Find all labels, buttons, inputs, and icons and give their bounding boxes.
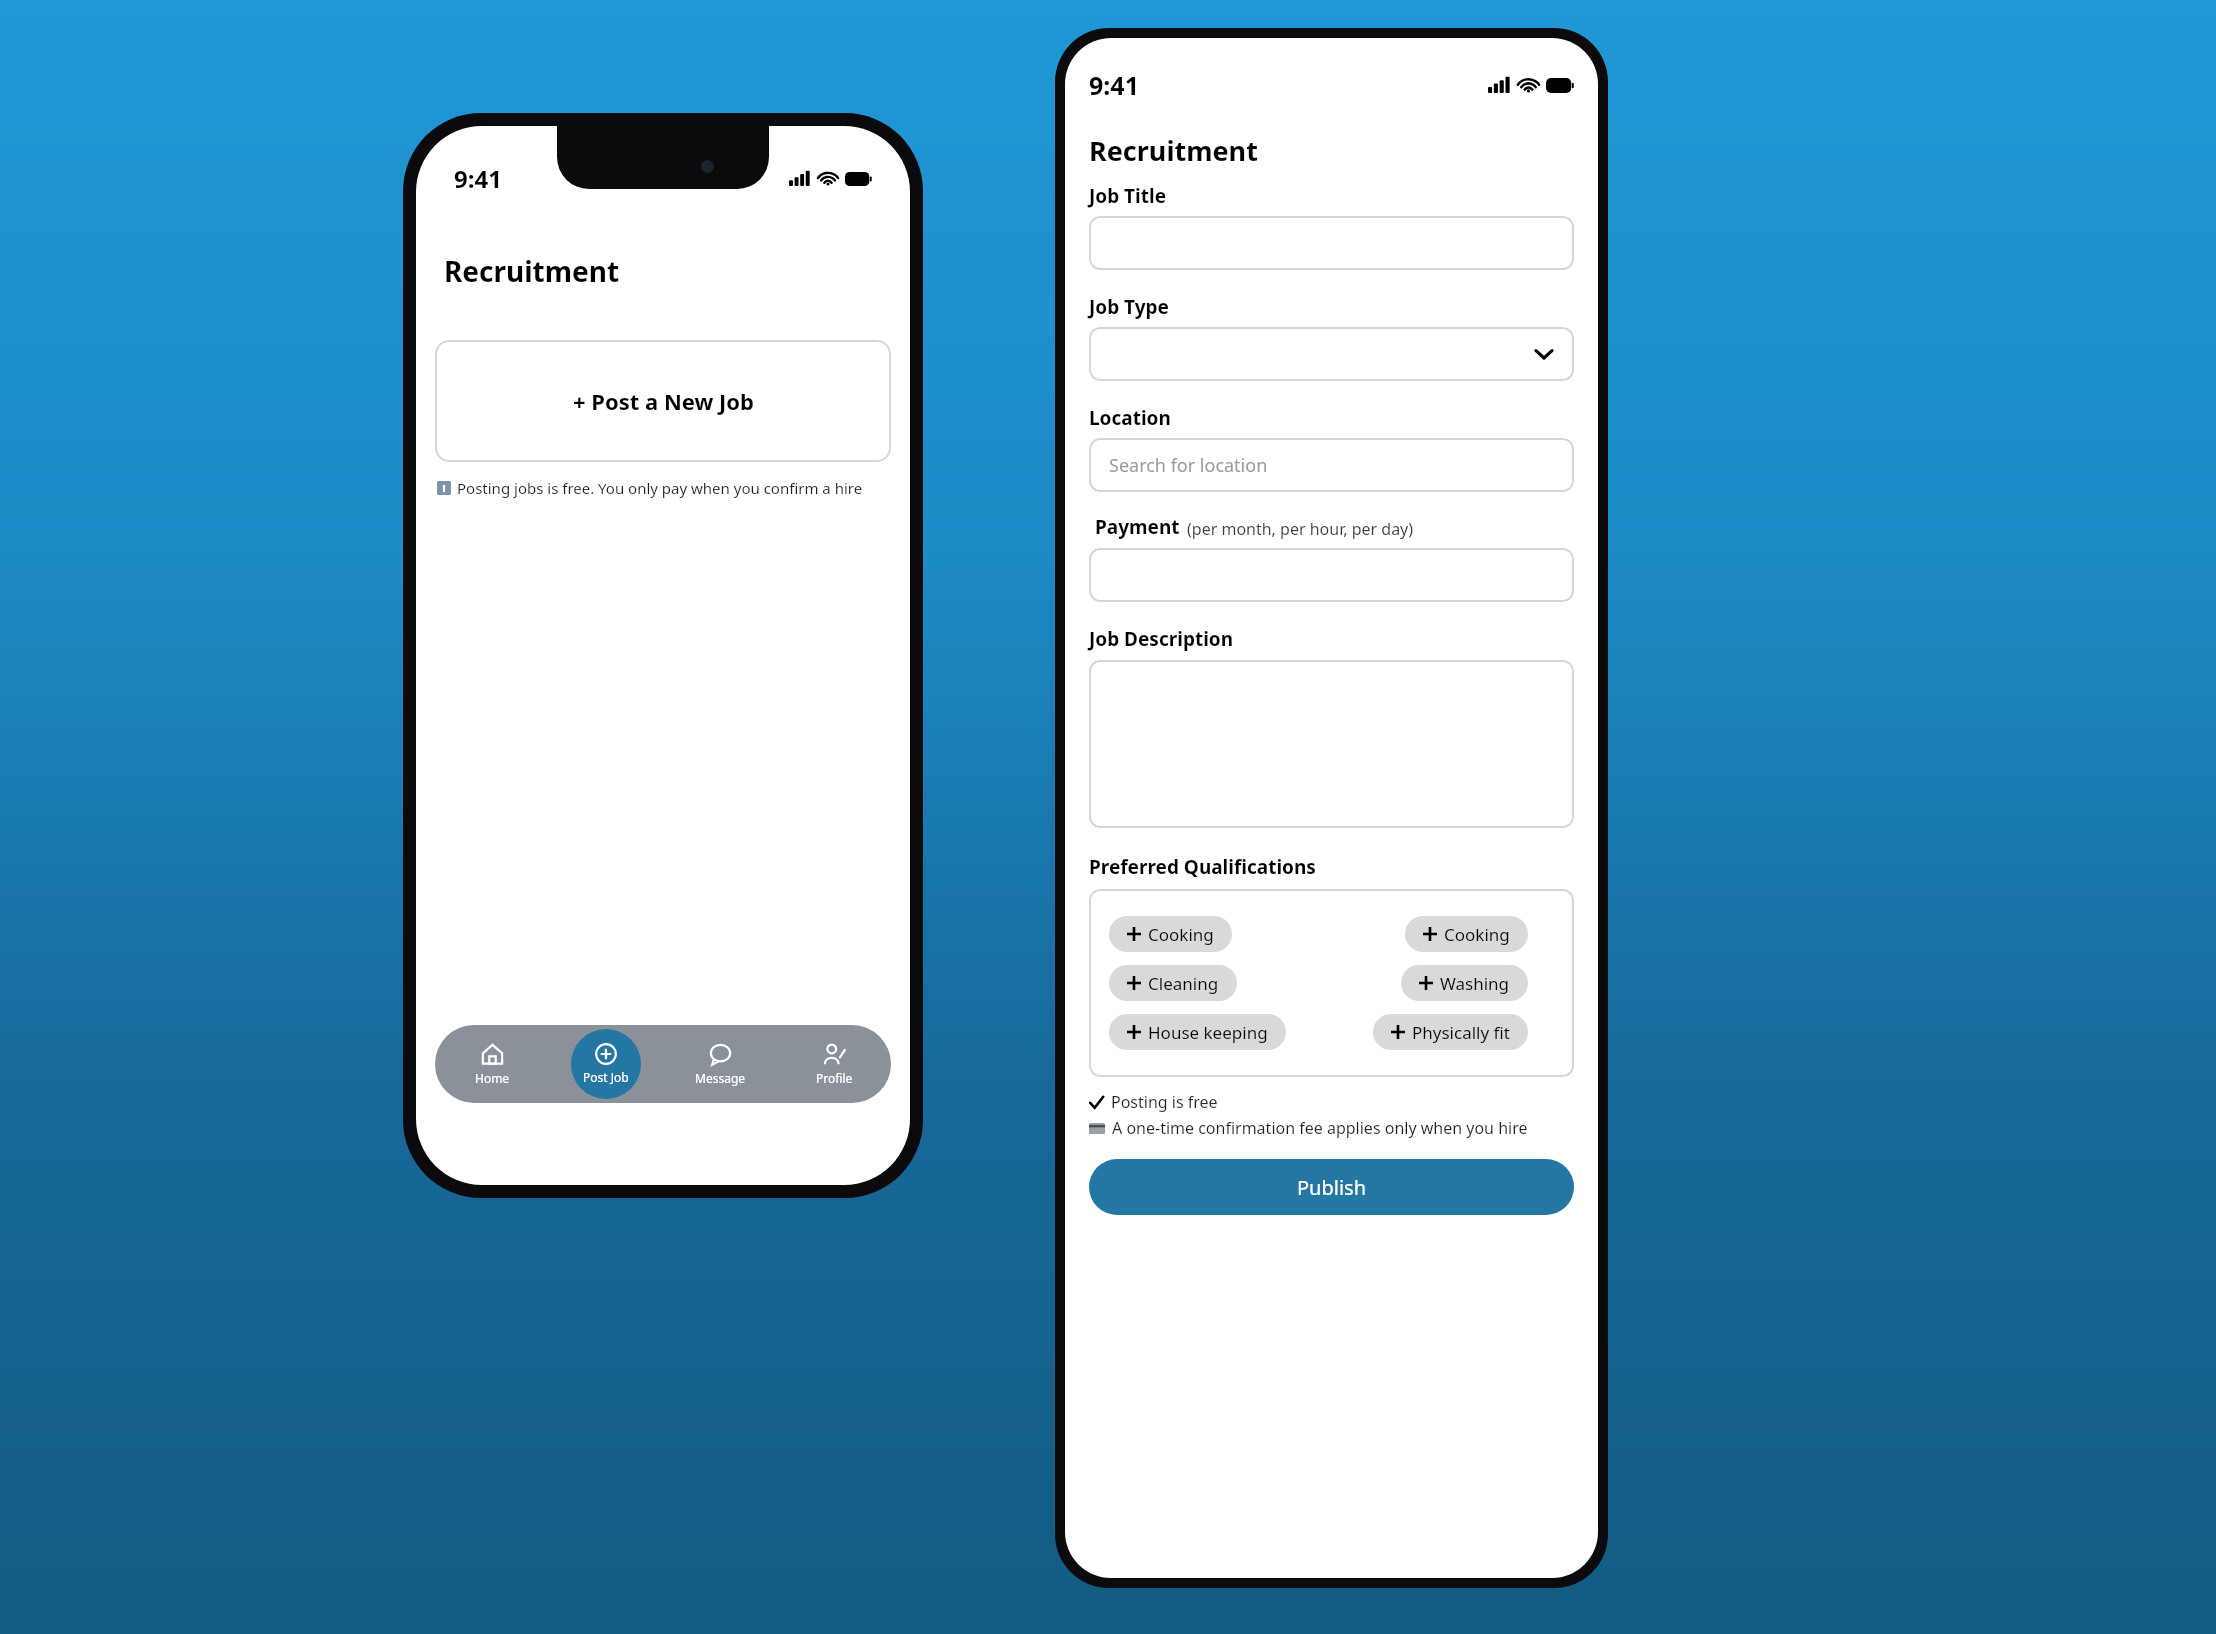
- button[interactable]: Publish: [1089, 1159, 1574, 1215]
- button[interactable]: [1089, 660, 1574, 828]
- button[interactable]: Physically fit: [1373, 1014, 1528, 1050]
- button[interactable]: [1089, 548, 1574, 602]
- button[interactable]: Cleaning: [1109, 965, 1237, 1001]
- staticText: Cooking: [1148, 923, 1214, 946]
- button[interactable]: [1089, 216, 1574, 270]
- staticText: Post Job: [583, 1069, 629, 1085]
- staticText: Publish: [1297, 1174, 1367, 1201]
- button[interactable]: Home: [435, 1025, 549, 1103]
- staticText: Recruitment: [1089, 132, 1258, 169]
- button[interactable]: [1089, 327, 1574, 381]
- staticText: Job Type: [1089, 294, 1169, 320]
- staticText: Payment: [1095, 514, 1180, 540]
- button[interactable]: Cooking: [1405, 916, 1528, 952]
- button[interactable]: Post Job: [571, 1029, 641, 1099]
- staticText: Message: [695, 1070, 746, 1086]
- staticText: Profile: [816, 1070, 853, 1086]
- staticText: Physically fit: [1412, 1021, 1510, 1044]
- staticText: Home: [475, 1070, 510, 1086]
- button[interactable]: Message: [663, 1025, 777, 1103]
- button[interactable]: Profile: [777, 1025, 891, 1103]
- staticText: Preferred Qualifications: [1089, 854, 1316, 880]
- staticText: Posting jobs is free. You only pay when …: [457, 478, 863, 498]
- staticText: Job Description: [1089, 626, 1234, 652]
- staticText: + Post a New Job: [573, 386, 754, 416]
- staticText: Location: [1089, 405, 1171, 431]
- staticText: 9:41: [454, 162, 502, 195]
- staticText: (per month, per hour, per day): [1187, 518, 1414, 540]
- staticText: House keeping: [1148, 1021, 1268, 1044]
- staticText: Job Title: [1089, 183, 1167, 209]
- staticText: Search for location: [1109, 453, 1268, 478]
- staticText: Washing: [1440, 972, 1510, 995]
- staticText: Recruitment: [444, 252, 620, 290]
- button[interactable]: Washing: [1401, 965, 1528, 1001]
- button[interactable]: + Post a New Job: [435, 340, 891, 462]
- staticText: Cleaning: [1148, 972, 1219, 995]
- button[interactable]: Search for location: [1089, 438, 1574, 492]
- staticText: 9:41: [1089, 68, 1139, 102]
- staticText: Cooking: [1444, 923, 1510, 946]
- staticText: A one-time confirmation fee applies only…: [1112, 1117, 1528, 1139]
- button[interactable]: House keeping: [1109, 1014, 1286, 1050]
- staticText: Posting is free: [1111, 1091, 1218, 1113]
- button[interactable]: Cooking: [1109, 916, 1232, 952]
